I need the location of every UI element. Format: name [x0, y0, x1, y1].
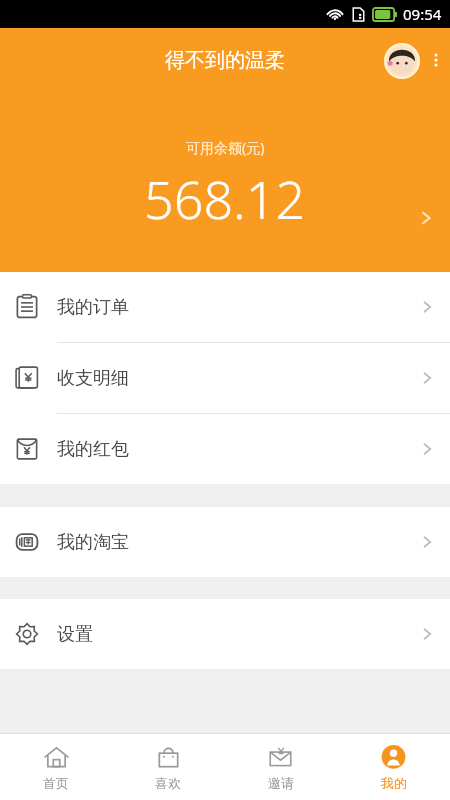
button[interactable]: 收支明细 — [0, 343, 450, 413]
button[interactable]: 设置 — [0, 599, 450, 669]
staticText: 喜欢 — [155, 775, 181, 791]
staticText: 09:54 — [403, 4, 442, 24]
staticText: 我的淘宝 — [57, 531, 129, 554]
button[interactable]: Profile avatar — [384, 43, 420, 79]
staticText: 我的 — [381, 775, 407, 791]
staticText: 设置 — [57, 623, 93, 646]
staticText: 首页 — [43, 775, 69, 791]
button[interactable]: 可用余额(元) — [0, 138, 450, 234]
staticText: 568.12 — [144, 163, 306, 234]
button[interactable]: 我的淘宝 — [0, 507, 450, 577]
staticText: 我的红包 — [57, 438, 129, 461]
button[interactable]: 我的红包 — [0, 414, 450, 484]
staticText: 得不到的温柔 — [165, 48, 285, 73]
button[interactable]: 邀请 — [224, 734, 337, 800]
button[interactable]: 首页 — [0, 734, 112, 800]
button[interactable]: 我的订单 — [0, 272, 450, 342]
button[interactable]: 喜欢 — [112, 734, 224, 800]
staticText: 邀请 — [268, 775, 294, 791]
staticText: 可用余额(元) — [186, 138, 265, 157]
staticText: 我的订单 — [57, 296, 129, 319]
staticText: 收支明细 — [57, 367, 129, 390]
button[interactable]: 我的 — [337, 734, 450, 800]
button[interactable]: More options — [422, 46, 450, 74]
